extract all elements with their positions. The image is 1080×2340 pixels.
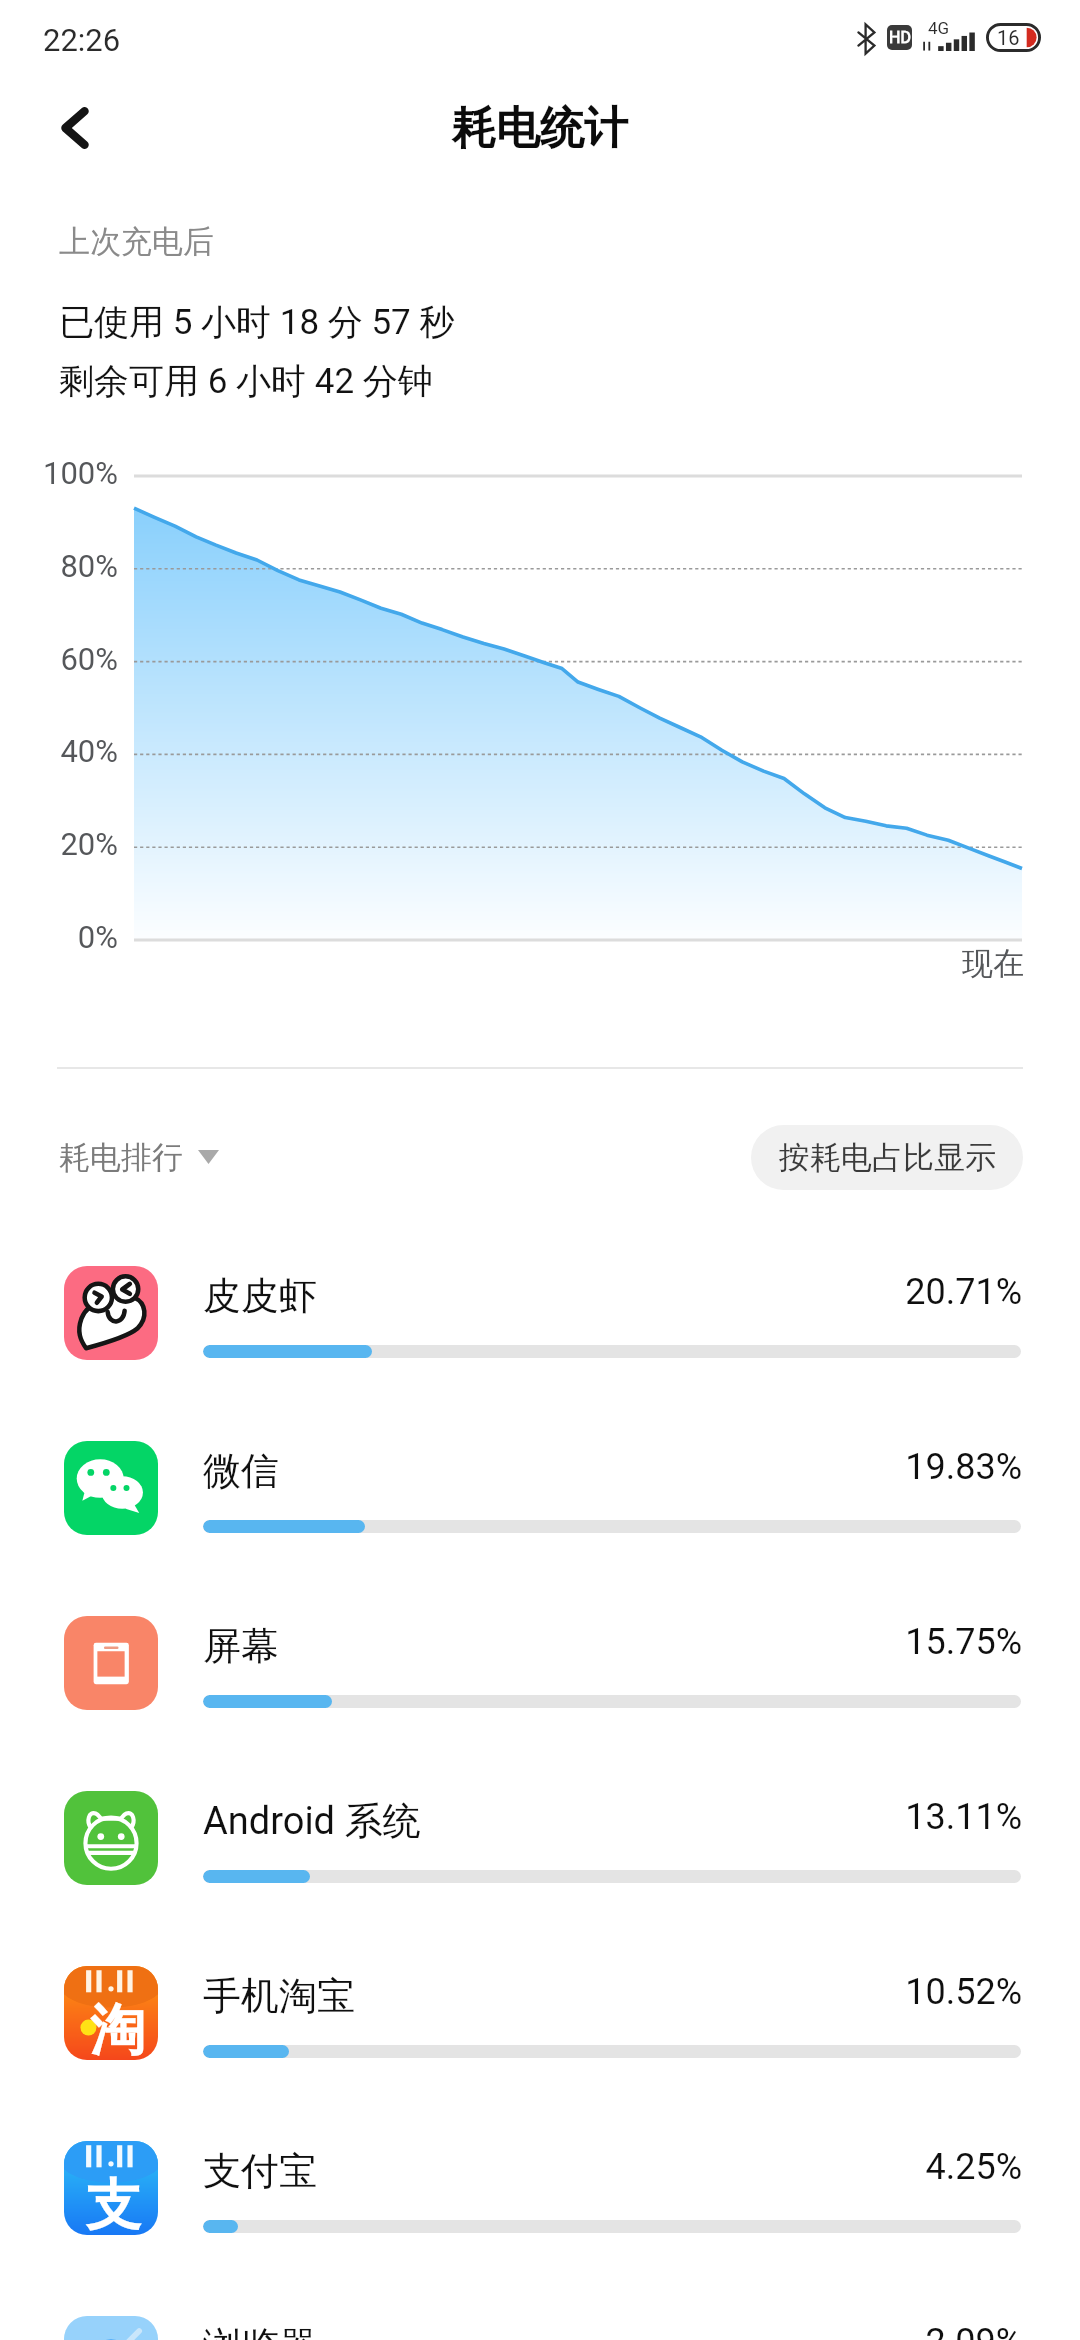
staticText: 手机淘宝 xyxy=(203,1972,355,2020)
button[interactable]: 微信 xyxy=(0,1419,1080,1594)
button[interactable]: 浏览器 xyxy=(0,2294,1080,2340)
staticText: 10.52% xyxy=(0,1971,1022,2013)
staticText: 已使用 5 小时 18 分 57 秒 xyxy=(59,300,455,344)
staticText: 0% xyxy=(0,919,118,955)
button[interactable]: 淘 xyxy=(0,1944,1080,2119)
staticText: 现在 xyxy=(962,944,1024,983)
staticText: 剩余可用 6 小时 42 分钟 xyxy=(59,359,433,403)
staticText: 上次充电后 xyxy=(59,222,214,261)
staticText: 皮皮虾 xyxy=(203,1272,317,1320)
staticText: 屏幕 xyxy=(203,1622,279,1670)
staticText: 淘 xyxy=(90,1996,145,2060)
staticText: 15.75% xyxy=(0,1621,1022,1663)
staticText: 20.71% xyxy=(0,1271,1022,1313)
staticText: 支 xyxy=(86,2171,141,2235)
button[interactable]: 皮皮虾 xyxy=(0,1244,1080,1419)
button[interactable]: 屏幕 xyxy=(0,1594,1080,1769)
staticText: 13.11% xyxy=(0,1796,1022,1838)
staticText: 耗电统计 xyxy=(452,101,628,156)
staticText: 80% xyxy=(0,548,118,584)
staticText: 60% xyxy=(0,641,118,677)
staticText: 支付宝 xyxy=(203,2147,317,2195)
button[interactable]: Android 系统 xyxy=(0,1769,1080,1944)
staticText: 19.83% xyxy=(0,1446,1022,1488)
staticText: 22:26 xyxy=(43,22,121,58)
staticText: Android 系统 xyxy=(203,1797,421,1845)
staticText: 浏览器 xyxy=(203,2322,317,2340)
staticText: 4G xyxy=(928,18,950,38)
staticText: 20% xyxy=(0,826,118,862)
staticText: 16 xyxy=(997,26,1020,49)
button[interactable]: Back xyxy=(22,75,127,181)
staticText: 按耗电占比显示 xyxy=(779,1138,996,1177)
staticText: 微信 xyxy=(203,1447,279,1495)
staticText: 2.09% xyxy=(0,2321,1022,2340)
staticText: 100% xyxy=(0,455,118,491)
staticText: HD xyxy=(889,28,911,47)
button[interactable]: 耗电排行 xyxy=(59,1127,219,1187)
staticText: 4.25% xyxy=(0,2146,1022,2188)
staticText: 耗电排行 xyxy=(59,1138,183,1177)
button[interactable]: 支 xyxy=(0,2119,1080,2294)
button[interactable]: 按耗电占比显示 xyxy=(751,1125,1023,1190)
staticText: 40% xyxy=(0,733,118,769)
